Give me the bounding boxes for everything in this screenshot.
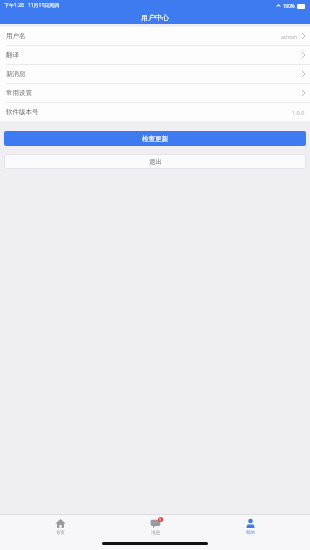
staticText: admin xyxy=(281,33,298,40)
button[interactable]: 软件版本号 xyxy=(0,103,310,121)
button[interactable]: 检查更新 xyxy=(4,131,306,146)
button[interactable]: 常用设置 xyxy=(0,84,310,102)
button[interactable]: 我的 xyxy=(215,518,285,536)
button[interactable]: 首页 xyxy=(25,518,95,536)
staticText: 1.0.0 xyxy=(292,109,305,116)
staticText: 我的 xyxy=(246,530,255,536)
staticText: 100% xyxy=(283,3,295,9)
staticText: 翻译 xyxy=(6,51,19,59)
button[interactable]: 翻译 xyxy=(0,46,310,64)
staticText: 用户中心 xyxy=(141,13,169,22)
staticText: 用户名 xyxy=(6,32,26,40)
staticText: 1 xyxy=(159,517,162,522)
staticText: 退出 xyxy=(149,158,162,166)
button[interactable]: 退出 xyxy=(4,154,306,169)
staticText: 软件版本号 xyxy=(6,108,39,116)
button[interactable]: 消息 xyxy=(120,518,190,536)
staticText: 新消息 xyxy=(6,70,26,78)
button[interactable]: 用户名 xyxy=(0,27,310,45)
staticText: 消息 xyxy=(151,530,160,536)
staticText: 下午1:26 11月11日周四 xyxy=(4,2,60,9)
button[interactable]: 新消息 xyxy=(0,65,310,83)
staticText: 首页 xyxy=(56,530,65,536)
staticText: 常用设置 xyxy=(6,89,32,97)
staticText: 检查更新 xyxy=(142,135,168,143)
